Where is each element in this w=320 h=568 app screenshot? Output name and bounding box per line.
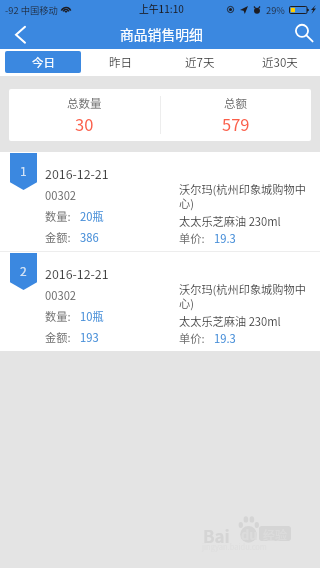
button[interactable]: 昨日 (80, 49, 160, 76)
button[interactable]: 1 (0, 152, 320, 251)
button[interactable]: 总额 (160, 89, 311, 141)
button[interactable]: 总数量 (9, 89, 160, 141)
staticText: 近7天 (185, 54, 215, 71)
staticText: 总数量 (67, 95, 102, 112)
staticText: 单价: (179, 230, 205, 246)
staticText: 昨日 (109, 54, 132, 71)
staticText: 商品销售明细 (120, 24, 203, 44)
staticText: 沃尔玛(杭州印象城购物中心) (179, 181, 309, 211)
staticText: 金额: (45, 329, 71, 345)
staticText: 29% (266, 3, 285, 16)
staticText: 数量: (45, 208, 71, 224)
staticText: jingyan.baidu.com (202, 541, 267, 552)
button[interactable]: 今日 (5, 51, 81, 73)
staticText: 太太乐芝麻油 230ml (179, 313, 281, 329)
staticText: 金额: (45, 229, 71, 245)
staticText: 2016-12-21 (45, 265, 109, 283)
button[interactable]: 近7天 (160, 49, 240, 76)
staticText: -92 中国移动 (5, 3, 58, 16)
staticText: 数量: (45, 308, 71, 324)
staticText: 193 (80, 329, 99, 345)
staticText: 30 (75, 112, 94, 136)
staticText: 沃尔玛(杭州印象城购物中心) (179, 281, 309, 311)
staticText: 2 (20, 262, 27, 279)
staticText: Bai (203, 523, 230, 548)
staticText: 19.3 (214, 230, 236, 246)
staticText: 1 (20, 162, 27, 179)
button[interactable]: Search (284, 18, 320, 49)
staticText: 00302 (45, 187, 77, 203)
staticText: 20瓶 (80, 208, 104, 224)
staticText: 00302 (45, 287, 77, 303)
staticText: 近30天 (262, 54, 298, 71)
staticText: 386 (80, 229, 99, 245)
button[interactable]: 近30天 (240, 49, 320, 76)
staticText: 2016-12-21 (45, 165, 109, 183)
staticText: 单价: (179, 330, 205, 346)
staticText: du (241, 525, 258, 544)
staticText: 太太乐芝麻油 230ml (179, 213, 281, 229)
staticText: 19.3 (214, 330, 236, 346)
button[interactable]: 2 (0, 252, 320, 351)
staticText: 上午11:10 (139, 2, 184, 16)
staticText: 579 (222, 112, 250, 136)
staticText: 今日 (32, 54, 55, 71)
staticText: 总额 (224, 95, 247, 112)
button[interactable]: Back (0, 18, 42, 49)
staticText: 10瓶 (80, 308, 104, 324)
